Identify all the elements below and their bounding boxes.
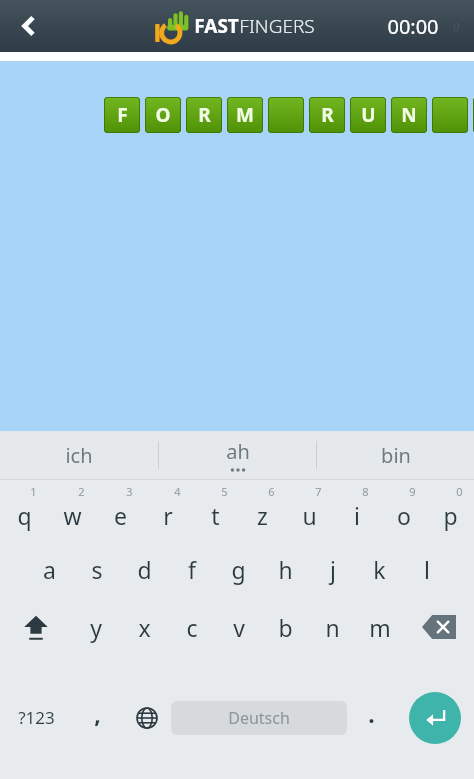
staticText: h <box>278 554 293 585</box>
staticText: j <box>330 554 336 585</box>
staticText: u <box>302 500 317 531</box>
button[interactable]: 9 <box>380 482 427 540</box>
button[interactable]: 4 <box>144 482 192 540</box>
button[interactable]: ah <box>159 431 316 479</box>
button[interactable]: g <box>215 540 262 598</box>
staticText: d <box>137 554 152 585</box>
button[interactable]: Enter <box>409 692 461 744</box>
button[interactable]: ?123 <box>0 656 73 779</box>
staticText: x <box>138 612 151 643</box>
button[interactable]: 7 <box>286 482 333 540</box>
staticText: n <box>325 612 340 643</box>
button[interactable]: 5 <box>192 482 239 540</box>
staticText: t <box>211 500 220 531</box>
button[interactable]: h <box>262 540 309 598</box>
staticText: c <box>186 612 198 643</box>
staticText: g <box>231 554 246 585</box>
staticText: i <box>354 500 360 531</box>
button[interactable]: 2 <box>48 482 96 540</box>
button[interactable]: b <box>262 598 309 656</box>
staticText: 00:00 <box>387 13 439 40</box>
button[interactable]: R <box>186 97 222 133</box>
button[interactable]: a <box>25 540 73 598</box>
button[interactable]: y <box>72 598 120 656</box>
button[interactable]: W <box>473 97 474 133</box>
staticText: bin <box>381 442 411 469</box>
staticText: 9 <box>409 484 416 499</box>
staticText: R <box>198 102 211 128</box>
staticText: y <box>90 612 102 643</box>
staticText: 3 <box>126 484 133 499</box>
staticText: O <box>155 102 171 128</box>
staticText: 0 <box>456 484 463 499</box>
staticText: s <box>91 554 103 585</box>
staticText: 1 <box>30 484 37 499</box>
button[interactable]: n <box>309 598 356 656</box>
staticText: . <box>368 698 375 729</box>
button[interactable]: c <box>168 598 215 656</box>
button[interactable]: m <box>356 598 403 656</box>
button[interactable]: Backspace <box>403 598 474 656</box>
staticText: 6 <box>268 484 275 499</box>
button[interactable]: Shift <box>0 598 72 656</box>
button[interactable]: d <box>121 540 168 598</box>
button[interactable]: R <box>309 97 345 133</box>
staticText: FAST <box>194 13 239 39</box>
staticText: w <box>63 500 82 531</box>
staticText: p <box>443 500 458 531</box>
button[interactable]: v <box>215 598 262 656</box>
button[interactable]: , <box>73 656 122 779</box>
staticText: F <box>117 102 128 128</box>
staticText: v <box>233 612 245 643</box>
staticText: 2 <box>78 484 85 499</box>
button[interactable]: bin <box>317 431 474 479</box>
button[interactable]: Back <box>0 0 58 52</box>
staticText: k <box>373 554 386 585</box>
button[interactable]: O <box>145 97 181 133</box>
staticText: m <box>369 612 391 643</box>
staticText: a <box>43 554 56 585</box>
staticText: Deutsch <box>228 707 290 729</box>
staticText: , <box>94 698 101 729</box>
button[interactable]: M <box>227 97 263 133</box>
button[interactable]: l <box>403 540 450 598</box>
staticText: f <box>188 554 196 585</box>
button[interactable]: 8 <box>333 482 380 540</box>
staticText: r <box>163 500 173 531</box>
button[interactable]: Change language <box>122 656 171 779</box>
staticText: 4 <box>174 484 181 499</box>
staticText: o <box>397 500 411 531</box>
button[interactable]: ich <box>0 431 158 479</box>
staticText: e <box>114 500 127 531</box>
button[interactable] <box>268 97 304 133</box>
staticText: 7 <box>315 484 322 499</box>
staticText: 5 <box>221 484 228 499</box>
button[interactable]: 0 <box>427 482 474 540</box>
button[interactable]: 3 <box>96 482 144 540</box>
staticText: 0 <box>453 19 460 34</box>
button[interactable]: j <box>309 540 356 598</box>
staticText: N <box>401 102 417 128</box>
button[interactable]: s <box>73 540 121 598</box>
button[interactable]: . <box>347 656 396 779</box>
staticText: ah <box>226 438 250 465</box>
staticText: ich <box>65 442 93 469</box>
button[interactable]: 6 <box>239 482 286 540</box>
staticText: q <box>17 500 32 531</box>
button[interactable]: N <box>391 97 427 133</box>
staticText: U <box>361 102 376 128</box>
button[interactable]: Deutsch <box>171 701 347 735</box>
staticText: z <box>257 500 268 531</box>
button[interactable]: U <box>350 97 386 133</box>
staticText: l <box>424 554 430 585</box>
button[interactable]: x <box>120 598 168 656</box>
staticText: b <box>278 612 293 643</box>
button[interactable]: k <box>356 540 403 598</box>
staticText: R <box>321 102 334 128</box>
staticText: M <box>236 102 254 128</box>
button[interactable] <box>432 97 468 133</box>
button[interactable]: f <box>168 540 215 598</box>
staticText: 8 <box>362 484 369 499</box>
button[interactable]: F <box>104 97 140 133</box>
button[interactable]: 1 <box>0 482 48 540</box>
